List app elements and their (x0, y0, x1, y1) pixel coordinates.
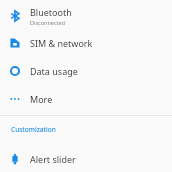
other: Bluetooth (9, 10, 21, 22)
button[interactable]: SIM and network (0, 29, 172, 57)
staticText: SIM & network (30, 37, 93, 49)
staticText: Disconnected (30, 19, 66, 26)
staticText: Bluetooth (30, 6, 72, 18)
other: Alert slider (9, 153, 21, 165)
button[interactable]: Bluetooth (0, 2, 172, 29)
staticText: Customization (11, 125, 56, 134)
button[interactable]: More (0, 85, 172, 112)
staticText: Data usage (30, 65, 78, 77)
other: Data usage (9, 65, 21, 77)
button[interactable]: Data usage (0, 57, 172, 85)
button[interactable]: Alert slider (0, 146, 172, 172)
other: More (9, 93, 21, 105)
staticText: More (30, 93, 53, 105)
other: SIM and network (9, 37, 21, 49)
staticText: Alert slider (30, 153, 76, 165)
